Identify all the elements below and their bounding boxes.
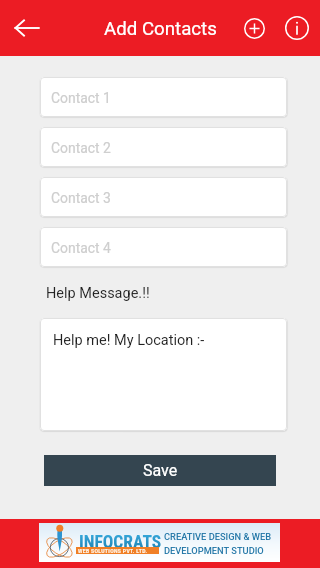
button[interactable]: Contact 4 <box>40 227 287 267</box>
staticText: INFOCRATS <box>79 532 162 553</box>
staticText: Contact 4 <box>51 240 111 256</box>
staticText: Contact 1 <box>51 90 111 106</box>
staticText: Help Message.!! <box>46 285 150 302</box>
button[interactable]: Advertisement <box>0 519 320 568</box>
button[interactable]: Contact 3 <box>40 177 287 217</box>
button[interactable]: Info <box>282 13 312 43</box>
button[interactable]: Help me! My Location :- <box>40 318 287 431</box>
staticText: Contact 3 <box>51 190 111 206</box>
staticText: Add Contacts <box>104 18 217 40</box>
staticText: Contact 2 <box>51 140 111 156</box>
button[interactable]: Contact 2 <box>40 127 287 167</box>
staticText: Help me! My Location :- <box>53 332 205 349</box>
button[interactable]: Contact 1 <box>40 77 287 117</box>
staticText: Save <box>143 461 178 480</box>
staticText: WEB SOLUTIONS PVT. LTD. <box>78 548 148 554</box>
button[interactable]: Back <box>3 4 51 52</box>
button[interactable]: Add contact <box>239 13 269 43</box>
button[interactable]: Save <box>44 455 276 486</box>
staticText: CREATIVE DESIGN & WEB DEVELOPMENT STUDIO <box>164 531 272 556</box>
